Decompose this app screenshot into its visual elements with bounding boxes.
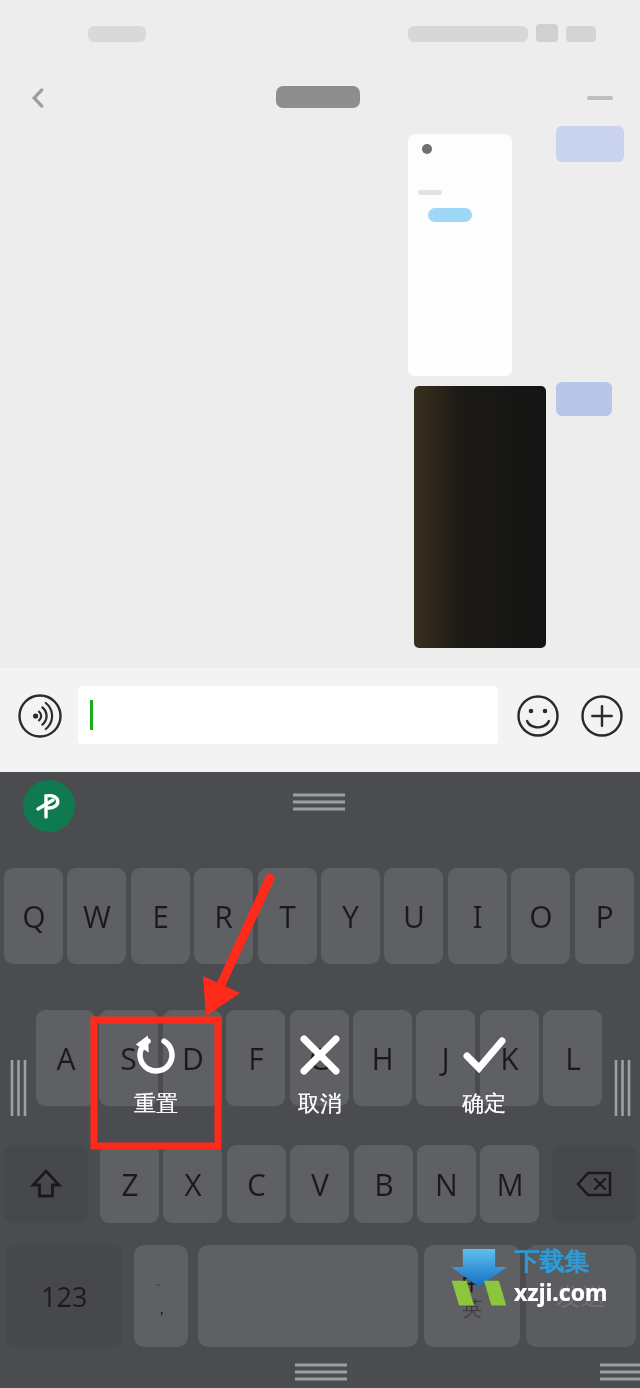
staticText: Q	[22, 896, 46, 937]
button[interactable]: Voice input	[12, 688, 68, 744]
staticText: P	[595, 896, 614, 937]
staticText: A	[56, 1038, 76, 1079]
button[interactable]: 确定	[422, 1020, 546, 1144]
staticText: B	[374, 1164, 394, 1205]
button[interactable]: 中	[424, 1245, 520, 1347]
staticText: 中	[462, 1271, 482, 1296]
staticText: 发送	[556, 1281, 606, 1312]
staticText: 。	[156, 1274, 167, 1288]
button[interactable]: N	[417, 1145, 476, 1223]
staticText: C	[247, 1164, 266, 1205]
button[interactable]: More options	[572, 70, 628, 126]
staticText: T	[279, 896, 296, 937]
button[interactable]: H	[353, 1010, 412, 1106]
staticText: 确定	[462, 1090, 506, 1118]
staticText: F	[248, 1038, 264, 1079]
staticText: X	[184, 1164, 202, 1205]
button[interactable]: C	[227, 1145, 286, 1223]
staticText: W	[83, 896, 111, 937]
staticText: R	[214, 896, 233, 937]
staticText: L	[565, 1038, 581, 1079]
button[interactable]: B	[354, 1145, 413, 1223]
button[interactable]: J	[416, 1010, 475, 1106]
button[interactable]: 。	[134, 1245, 188, 1347]
button[interactable]	[78, 686, 498, 744]
button[interactable]: X	[163, 1145, 222, 1223]
button[interactable]: 发送	[526, 1245, 636, 1347]
button[interactable]: Z	[100, 1145, 159, 1223]
staticText: 英	[462, 1296, 482, 1321]
button[interactable]: Keyboard logo	[23, 780, 75, 832]
button[interactable]: Q	[4, 868, 63, 964]
staticText: D	[182, 1038, 204, 1079]
button[interactable]: A	[36, 1010, 95, 1106]
button[interactable]	[414, 386, 546, 648]
button[interactable]: 重置	[94, 1020, 218, 1144]
staticText: U	[403, 896, 425, 937]
staticText: G	[309, 1038, 331, 1079]
button[interactable]: K	[480, 1010, 539, 1106]
staticText: 123	[41, 1278, 88, 1315]
button[interactable]: M	[480, 1145, 539, 1223]
button[interactable]: Back	[8, 68, 68, 128]
button[interactable]: Emoji	[510, 688, 566, 744]
button[interactable]: U	[384, 868, 443, 964]
staticText: H	[371, 1038, 394, 1079]
button[interactable]: G	[290, 1010, 349, 1106]
button[interactable]: R	[194, 868, 253, 964]
staticText: 下载集	[514, 1246, 589, 1277]
staticText: J	[441, 1038, 450, 1079]
staticText: Z	[121, 1164, 139, 1205]
staticText: 取消	[298, 1090, 342, 1118]
staticText: I	[472, 896, 483, 937]
button[interactable]: 123	[6, 1245, 122, 1347]
staticText: N	[435, 1164, 458, 1205]
staticText: M	[496, 1164, 524, 1205]
button[interactable]: Shift	[4, 1145, 88, 1223]
button[interactable]: E	[131, 868, 190, 964]
button[interactable]: D	[163, 1010, 222, 1106]
button[interactable]: P	[575, 868, 634, 964]
button[interactable]: 取消	[258, 1020, 382, 1144]
staticText: ，	[153, 1298, 170, 1319]
button[interactable]: I	[448, 868, 507, 964]
button[interactable]: W	[67, 868, 126, 964]
staticText: Y	[342, 896, 359, 937]
staticText: S	[120, 1038, 137, 1079]
staticText: K	[500, 1038, 519, 1079]
button[interactable]: T	[258, 868, 317, 964]
button[interactable]: Backspace	[552, 1145, 636, 1223]
staticText: xzji.com	[514, 1276, 608, 1307]
button[interactable]: F	[226, 1010, 285, 1106]
button[interactable]: V	[290, 1145, 349, 1223]
button[interactable]	[408, 134, 512, 376]
staticText: E	[152, 896, 169, 937]
button[interactable]: S	[99, 1010, 158, 1106]
button[interactable]: L	[543, 1010, 602, 1106]
staticText: O	[529, 896, 553, 937]
button[interactable]: More functions	[574, 688, 630, 744]
staticText: V	[311, 1164, 329, 1205]
staticText: 重置	[134, 1090, 178, 1118]
button[interactable]: Y	[321, 868, 380, 964]
button[interactable]: O	[511, 868, 570, 964]
